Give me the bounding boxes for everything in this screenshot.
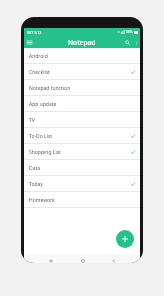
button[interactable]: Add note (116, 230, 134, 248)
button[interactable]: Homework (24, 192, 140, 208)
button[interactable]: Android (24, 48, 140, 64)
staticText: Notepad (68, 38, 96, 47)
staticText: 58% (126, 30, 133, 34)
staticText: Shopping List (29, 149, 61, 156)
staticText: To-Do List (29, 133, 53, 140)
staticText: Today (29, 181, 43, 188)
staticText: Android (29, 53, 48, 60)
staticText: App update (29, 101, 57, 108)
button[interactable]: Shopping List (24, 144, 140, 160)
button[interactable]: Checklist (24, 64, 140, 80)
staticText: TV (29, 117, 35, 124)
button[interactable]: Notepad function (24, 80, 140, 96)
button[interactable]: To-Do List (24, 128, 140, 144)
button[interactable]: Home (77, 255, 88, 263)
button[interactable]: Data (24, 160, 140, 176)
staticText: Homework (29, 197, 55, 204)
staticText: Notepad function (29, 85, 71, 92)
staticText: Checklist (29, 69, 50, 76)
button[interactable]: More options (132, 39, 140, 47)
staticText: Data (29, 165, 41, 172)
button[interactable]: Navigation menu (25, 38, 34, 47)
button[interactable]: TV (24, 112, 140, 128)
staticText: SKT 3:12 (27, 30, 42, 35)
button[interactable]: App update (24, 96, 140, 112)
button[interactable]: Back (108, 255, 119, 263)
button[interactable]: Today (24, 176, 140, 192)
button[interactable]: Search (123, 38, 132, 47)
button[interactable]: Recent apps (45, 255, 56, 263)
